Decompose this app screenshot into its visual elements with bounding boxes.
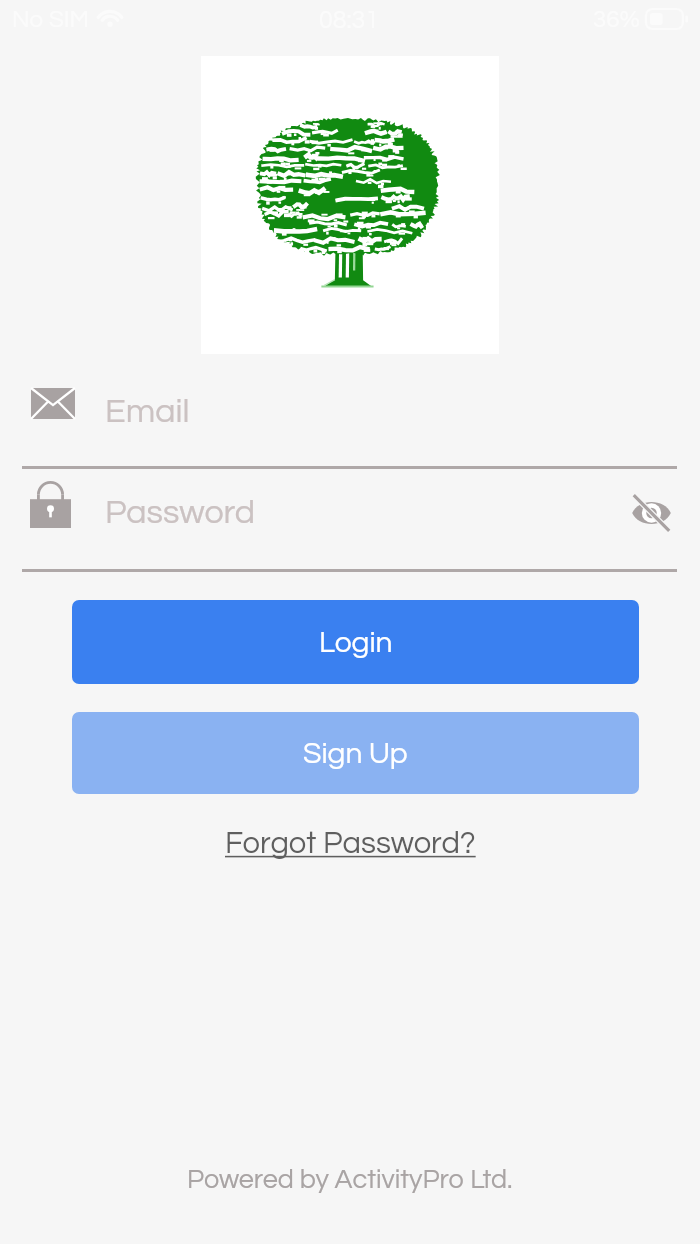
staticText: Sign Up: [303, 738, 408, 769]
button[interactable]: Show password: [613, 475, 689, 551]
button[interactable]: Email: [0, 372, 700, 466]
staticText: Powered by ActivityPro Ltd.: [187, 1166, 513, 1194]
staticText: Login: [319, 627, 393, 658]
button[interactable]: Password: [105, 495, 256, 530]
button[interactable]: Sign Up: [72, 712, 639, 794]
staticText: Email: [105, 394, 190, 429]
button[interactable]: Forgot Password?: [221, 828, 480, 860]
button[interactable]: Login: [72, 600, 639, 684]
